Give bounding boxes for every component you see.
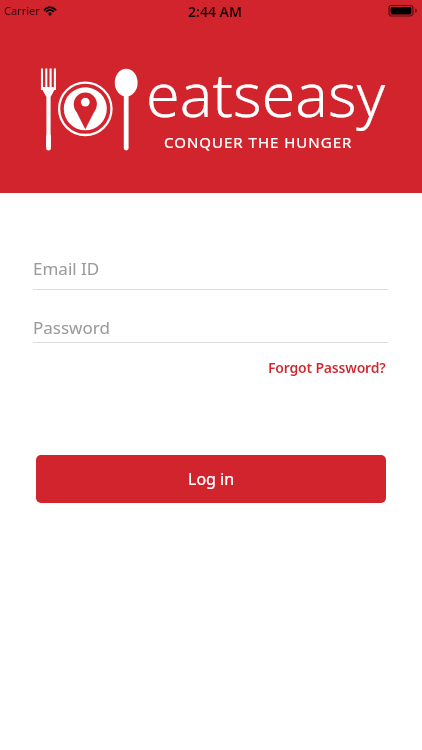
staticText: 2:44 AM (4, 2, 422, 21)
staticText: Carrier (4, 3, 40, 18)
button[interactable]: Forgot Password? (268, 358, 386, 377)
button[interactable] (33, 313, 388, 344)
staticText: Log in (188, 468, 235, 490)
staticText: CONQUER THE HUNGER (164, 132, 353, 152)
staticText: eatseasy (146, 52, 386, 135)
staticText: Password (33, 316, 110, 339)
staticText: Email ID (33, 257, 100, 280)
button[interactable] (33, 253, 388, 291)
button[interactable]: Log in (36, 455, 386, 503)
staticText: Forgot Password? (268, 358, 386, 377)
